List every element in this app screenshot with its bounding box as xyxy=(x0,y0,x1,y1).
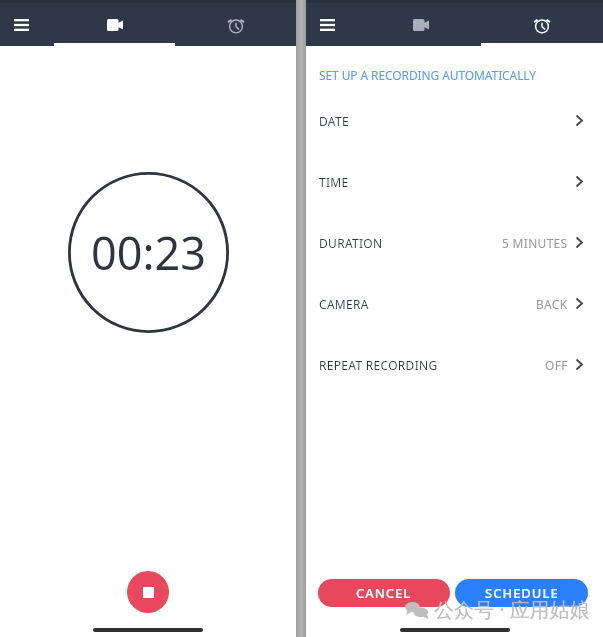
staticText: SET UP A RECORDING AUTOMATICALLY xyxy=(319,67,536,83)
button[interactable]: Schedule xyxy=(481,3,603,46)
staticText: DURATION xyxy=(319,235,383,251)
button[interactable]: Record xyxy=(360,3,481,46)
button[interactable]: DURATION xyxy=(306,212,603,273)
staticText: DATE xyxy=(319,113,349,129)
staticText: SCHEDULE xyxy=(485,584,559,602)
staticText: CAMERA xyxy=(319,296,369,312)
button[interactable]: SCHEDULE xyxy=(455,579,588,607)
staticText: 5 MINUTES xyxy=(502,235,568,251)
staticText: 00:23 xyxy=(91,222,207,283)
staticText: BACK xyxy=(536,296,568,312)
button[interactable]: Schedule xyxy=(175,3,296,46)
button[interactable]: Record xyxy=(54,3,175,46)
button[interactable]: Menu xyxy=(306,3,360,46)
staticText: REPEAT RECORDING xyxy=(319,357,438,373)
staticText: TIME xyxy=(319,174,349,190)
button[interactable]: TIME xyxy=(306,151,603,212)
button[interactable]: Stop recording xyxy=(127,571,169,613)
staticText: OFF xyxy=(545,357,568,373)
staticText: CANCEL xyxy=(356,584,412,602)
button[interactable]: CANCEL xyxy=(318,579,450,607)
staticText: 公众号 · 应用姑娘 xyxy=(434,596,590,623)
button[interactable]: CAMERA xyxy=(306,273,603,334)
button[interactable]: DATE xyxy=(306,90,603,151)
button[interactable]: REPEAT RECORDING xyxy=(306,334,603,395)
button[interactable]: Menu xyxy=(0,3,54,46)
